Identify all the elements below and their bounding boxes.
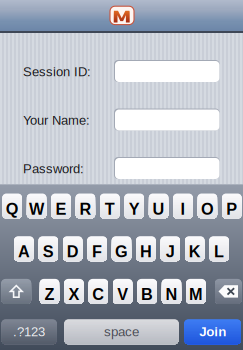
button[interactable]: W <box>27 193 46 218</box>
staticText: Password: <box>23 161 84 176</box>
button[interactable]: space <box>64 319 178 344</box>
button[interactable]: M <box>186 279 206 304</box>
button[interactable]: A <box>14 236 34 261</box>
staticText: F <box>92 243 102 261</box>
staticText: X <box>68 285 79 303</box>
staticText: Join <box>199 324 226 339</box>
button[interactable] <box>114 157 219 179</box>
staticText: V <box>117 285 128 303</box>
button[interactable]: Join <box>184 319 241 344</box>
staticText: B <box>141 285 153 303</box>
button[interactable]: H <box>136 236 156 261</box>
staticText: K <box>189 243 201 261</box>
staticText: S <box>43 243 54 261</box>
staticText: U <box>153 200 165 218</box>
staticText: J <box>166 243 175 261</box>
staticText: Session ID: <box>23 64 91 79</box>
button[interactable]: C <box>89 279 108 304</box>
staticText: Z <box>44 285 54 303</box>
button[interactable]: P <box>222 193 241 218</box>
button[interactable]: K <box>185 236 204 261</box>
button[interactable]: Y <box>124 193 144 218</box>
button[interactable]: D <box>63 236 82 261</box>
button[interactable]: U <box>149 193 168 218</box>
staticText: Your Name: <box>23 113 90 127</box>
staticText: W <box>29 200 44 218</box>
button[interactable]: O <box>198 193 217 218</box>
staticText: E <box>55 200 66 218</box>
button[interactable]: I <box>173 193 193 218</box>
button[interactable]: Q <box>2 193 22 218</box>
staticText: space <box>104 324 139 339</box>
staticText: A <box>18 243 30 261</box>
staticText: O <box>201 200 214 218</box>
button[interactable]: B <box>137 279 157 304</box>
button[interactable] <box>114 108 219 130</box>
button[interactable]: N <box>162 279 181 304</box>
button[interactable]: T <box>100 193 119 218</box>
staticText: R <box>79 200 91 218</box>
button[interactable]: Z <box>40 279 59 304</box>
staticText: P <box>226 200 237 218</box>
staticText: N <box>165 285 177 303</box>
staticText: H <box>140 243 152 261</box>
button[interactable]: Shift <box>1 279 31 304</box>
button[interactable]: J <box>161 236 180 261</box>
button[interactable]: V <box>113 279 132 304</box>
button[interactable]: Delete <box>215 279 241 304</box>
button[interactable]: S <box>39 236 58 261</box>
staticText: Q <box>6 200 19 218</box>
staticText: L <box>214 243 224 261</box>
button[interactable]: F <box>87 236 107 261</box>
staticText: I <box>180 200 185 218</box>
button[interactable]: G <box>112 236 131 261</box>
staticText: Y <box>129 200 140 218</box>
button[interactable]: R <box>76 193 95 218</box>
button[interactable]: X <box>64 279 84 304</box>
staticText: M <box>189 285 203 303</box>
staticText: D <box>67 243 79 261</box>
staticText: T <box>105 200 115 218</box>
button[interactable]: L <box>209 236 229 261</box>
button[interactable] <box>114 60 219 82</box>
staticText: .?123 <box>13 324 45 339</box>
button[interactable]: E <box>51 193 71 218</box>
staticText: G <box>115 243 128 261</box>
staticText: C <box>92 285 104 303</box>
button[interactable]: .?123 <box>2 319 57 344</box>
